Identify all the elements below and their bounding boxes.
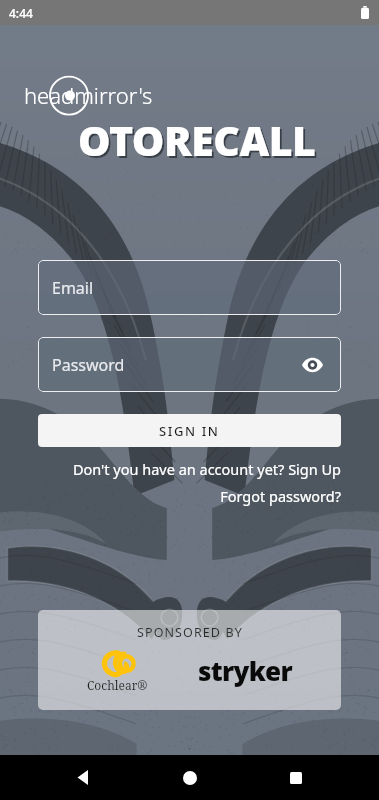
button[interactable]: SIGN IN [38,414,341,447]
staticText: SPONSORED BY [137,624,243,641]
staticText: 4:44 [9,5,33,21]
button[interactable]: Back [60,755,106,800]
button[interactable]: Show password [297,350,327,380]
button[interactable]: SPONSORED BY [38,610,341,710]
staticText: Password [52,354,125,376]
staticText: OTORECALL [78,112,316,160]
staticText: Cochlear® [87,677,148,693]
staticText: headmirror's [24,80,153,110]
staticText: Forgot password? [220,486,341,506]
button[interactable]: Don't you have an account yet? Sign Up [38,459,341,479]
staticText: SIGN IN [159,422,220,440]
staticText: stryker [198,653,292,688]
staticText: OTORECALL [80,114,318,162]
button[interactable]: Home [167,755,213,800]
staticText: Email [52,277,94,299]
staticText: Don't you have an account yet? Sign Up [72,459,341,479]
button[interactable]: Email [38,260,341,315]
button[interactable]: Password [38,337,341,392]
button[interactable]: Forgot password? [38,486,341,506]
button[interactable]: Recent apps [273,755,319,800]
